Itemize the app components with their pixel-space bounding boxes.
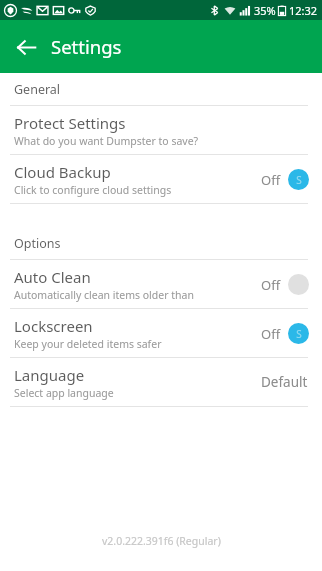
button[interactable]: Auto Clean [0, 260, 322, 308]
staticText: Default [261, 373, 308, 391]
button[interactable]: Lockscreen [0, 309, 322, 357]
button[interactable]: Cloud Backup [0, 155, 322, 203]
staticText: Off [261, 171, 281, 189]
staticText: General [14, 81, 61, 98]
staticText: Click to configure cloud settings [14, 183, 172, 197]
staticText: S [296, 173, 302, 187]
staticText: 12:32 [289, 3, 318, 18]
staticText: Keep your deleted items safer [14, 337, 162, 351]
staticText: Off [261, 325, 281, 343]
staticText: 35% [254, 3, 276, 18]
button[interactable]: Default [258, 373, 311, 391]
button[interactable]: Navigate up [8, 29, 44, 65]
staticText: Cloud Backup [14, 162, 111, 182]
button[interactable]: Off [259, 169, 311, 190]
staticText: Automatically clean items older than [14, 288, 194, 302]
staticText: Language [14, 365, 85, 385]
button[interactable]: Protect Settings [0, 106, 322, 154]
staticText: Off [261, 276, 281, 294]
button[interactable]: Off [259, 274, 311, 295]
staticText: Lockscreen [14, 316, 93, 336]
button[interactable]: Language [0, 358, 322, 406]
staticText: Settings [51, 34, 122, 59]
staticText: Protect Settings [14, 113, 126, 133]
staticText: Select app language [14, 386, 114, 400]
staticText: Auto Clean [14, 267, 91, 287]
staticText: Options [14, 235, 61, 252]
staticText: v2.0.222.391f6 (Regular) [102, 534, 221, 548]
staticText: What do you want Dumpster to save? [14, 134, 199, 148]
button[interactable]: Off [259, 323, 311, 344]
staticText: S [296, 327, 302, 341]
